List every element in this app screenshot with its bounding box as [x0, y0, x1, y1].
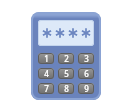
staticText: 2: [64, 53, 69, 64]
button[interactable]: 4: [38, 68, 54, 79]
button[interactable]: 8: [58, 83, 74, 94]
button[interactable]: 3: [78, 53, 94, 64]
other: PIN pad: [31, 12, 101, 100]
staticText: 9: [84, 83, 89, 94]
staticText: 5: [64, 68, 69, 79]
staticText: 3: [84, 53, 89, 64]
staticText: 4: [44, 68, 49, 79]
button[interactable]: 6: [78, 68, 94, 79]
button[interactable]: 1: [38, 53, 54, 64]
button[interactable]: 2: [58, 53, 74, 64]
staticText: 1: [44, 53, 49, 64]
staticText: 6: [84, 68, 89, 79]
staticText: 8: [64, 83, 69, 94]
staticText: 7: [44, 83, 49, 94]
button[interactable]: 9: [78, 83, 94, 94]
button[interactable]: 7: [38, 83, 54, 94]
button[interactable]: 5: [58, 68, 74, 79]
